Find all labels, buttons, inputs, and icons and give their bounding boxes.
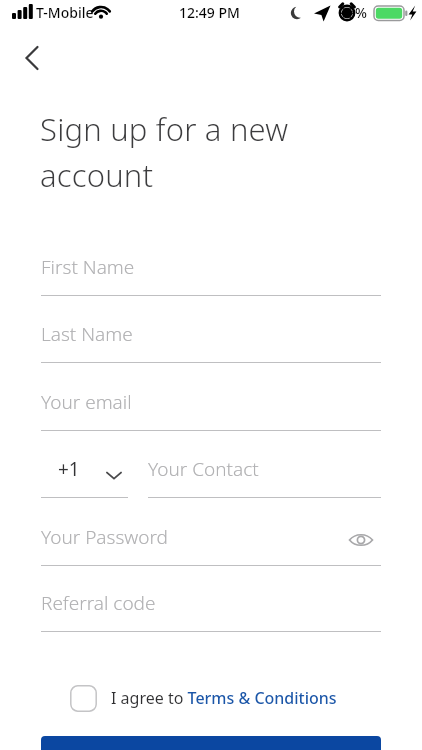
staticText: +1	[58, 456, 80, 482]
button[interactable]: Referral code	[41, 584, 381, 632]
staticText: Your email	[41, 389, 132, 415]
staticText: 98%	[339, 3, 367, 22]
button[interactable]: Your email	[41, 383, 381, 431]
staticText: I agree to Terms & Conditions	[111, 687, 337, 709]
button[interactable]: Your Password	[41, 518, 381, 566]
staticText: First Name	[41, 254, 135, 280]
button[interactable]: Show password	[341, 520, 381, 560]
staticText: Sign up for a new account	[40, 108, 289, 196]
button[interactable]: Your Contact	[148, 450, 381, 498]
staticText: Last Name	[41, 321, 133, 347]
staticText: Referral code	[41, 590, 156, 616]
button[interactable]: I agree to Terms & Conditions	[70, 678, 337, 718]
staticText: Your Contact	[148, 456, 259, 482]
button[interactable]: Last Name	[41, 315, 381, 363]
button[interactable]: Back	[8, 36, 52, 80]
button[interactable]: Country code +1	[41, 450, 128, 498]
staticText: Your Password	[41, 524, 168, 550]
staticText: 12:49 PM	[179, 3, 240, 22]
button[interactable]: First Name	[41, 248, 381, 296]
staticText: T-Mobile	[36, 3, 94, 22]
button[interactable]: Sign up	[41, 736, 381, 750]
